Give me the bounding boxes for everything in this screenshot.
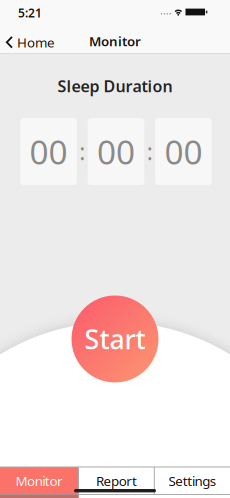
staticText: 00 — [164, 129, 202, 174]
staticText: Sleep Duration — [57, 75, 172, 97]
button[interactable]: Monitor — [0, 467, 78, 494]
staticText: : — [147, 136, 153, 166]
staticText: Monitor — [89, 32, 141, 50]
staticText: Home — [17, 33, 55, 51]
button[interactable]: Back — [0, 29, 55, 55]
staticText: 5:21 — [18, 5, 42, 21]
button[interactable]: Report — [78, 467, 154, 494]
button[interactable]: Start — [71, 295, 158, 382]
button[interactable]: Settings — [154, 467, 230, 494]
staticText: Settings — [169, 472, 216, 490]
staticText: : — [79, 136, 85, 166]
staticText: Report — [96, 472, 137, 490]
staticText: Start — [84, 321, 145, 357]
staticText: Monitor — [15, 472, 63, 490]
staticText: 00 — [97, 129, 135, 174]
staticText: 00 — [29, 129, 67, 174]
